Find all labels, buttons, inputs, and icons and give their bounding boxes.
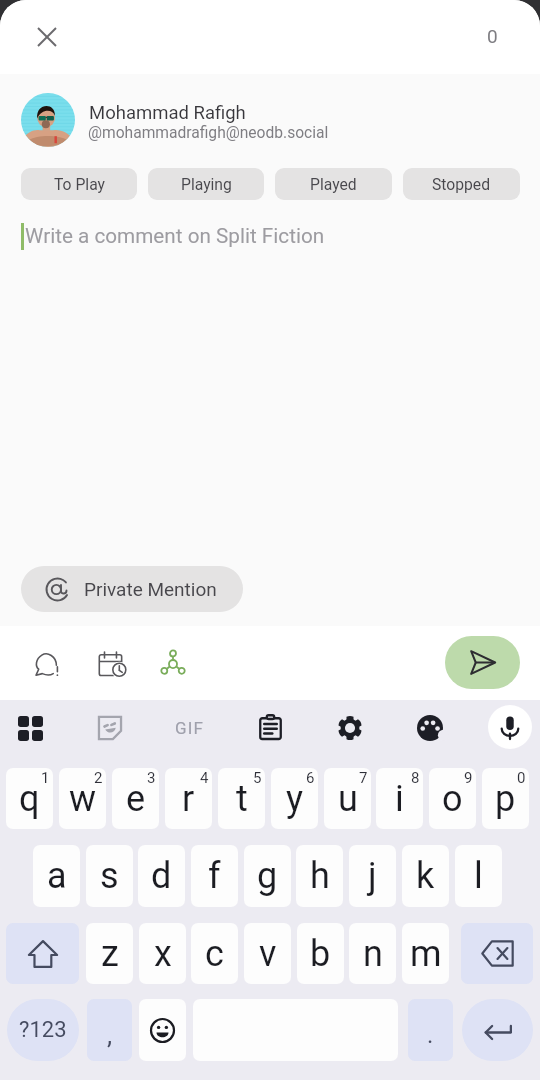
staticText: e [126, 778, 146, 820]
staticText: p [495, 778, 516, 820]
staticText: b [310, 933, 331, 975]
staticText: , [107, 1020, 113, 1050]
button[interactable]: Shift [6, 923, 79, 984]
button[interactable]: Voice input [488, 705, 532, 749]
button[interactable]: Private Mention [21, 566, 243, 612]
button[interactable]: o [429, 768, 476, 829]
staticText: f [208, 855, 221, 897]
button[interactable]: . [408, 999, 453, 1061]
staticText: c [205, 933, 224, 975]
staticText: 1 [41, 769, 50, 787]
staticText: GIF [175, 718, 205, 738]
button[interactable]: Visibility [151, 641, 195, 685]
button[interactable]: l [455, 845, 502, 907]
staticText: q [19, 778, 40, 820]
staticText: x [154, 933, 172, 975]
staticText: 6 [306, 769, 315, 787]
button[interactable]: Send [445, 636, 520, 689]
button[interactable]: Backspace [461, 923, 533, 984]
staticText: r [182, 778, 195, 820]
button[interactable]: Close [23, 13, 71, 61]
staticText: u [338, 778, 358, 820]
staticText: t [236, 778, 248, 820]
button[interactable]: Apps [8, 706, 52, 750]
button[interactable]: Stickers [88, 706, 132, 750]
staticText: j [368, 855, 377, 897]
button[interactable]: Emoji [139, 999, 186, 1061]
staticText: z [101, 933, 119, 975]
button[interactable]: Clipboard [248, 705, 292, 749]
button[interactable]: n [349, 923, 396, 984]
button[interactable]: Content warning [25, 642, 69, 686]
staticText: . [427, 1021, 434, 1049]
staticText: g [257, 855, 278, 897]
button[interactable]: Played [275, 168, 392, 200]
staticText: 7 [359, 769, 368, 787]
button[interactable]: c [191, 923, 238, 984]
staticText: @mohammadrafigh@neodb.social [88, 124, 329, 142]
staticText: 4 [200, 769, 209, 787]
staticText: Stopped [432, 175, 491, 193]
staticText: i [395, 778, 404, 820]
button[interactable]: v [244, 923, 291, 984]
button[interactable]: z [86, 923, 133, 984]
staticText: Played [310, 175, 357, 193]
staticText: w [69, 778, 97, 820]
staticText: k [416, 855, 435, 897]
staticText: o [442, 778, 463, 820]
button[interactable]: y [271, 768, 318, 829]
button[interactable]: e [112, 768, 159, 829]
button[interactable]: m [402, 923, 449, 984]
staticText: y [286, 778, 304, 820]
button[interactable]: Themes [408, 706, 452, 750]
button[interactable]: a [33, 845, 80, 907]
button[interactable]: Stopped [403, 168, 520, 200]
button[interactable]: w [59, 768, 106, 829]
staticText: Mohammad Rafigh [89, 102, 246, 124]
button[interactable]: k [402, 845, 449, 907]
button[interactable]: , [87, 999, 132, 1061]
button[interactable]: g [244, 845, 291, 907]
button[interactable]: f [191, 845, 238, 907]
button[interactable]: t [218, 768, 265, 829]
staticText: n [363, 933, 383, 975]
button[interactable]: GIF [168, 706, 212, 750]
staticText: h [310, 855, 330, 897]
button[interactable]: x [139, 923, 186, 984]
staticText: l [474, 855, 483, 897]
staticText: a [47, 855, 67, 897]
button[interactable]: Schedule [89, 641, 133, 685]
button[interactable]: r [165, 768, 212, 829]
staticText: 0 [487, 25, 498, 47]
button[interactable]: i [376, 768, 423, 829]
staticText: 2 [94, 769, 103, 787]
button[interactable]: Settings [328, 706, 372, 750]
button[interactable]: b [297, 923, 344, 984]
button[interactable]: j [349, 845, 396, 907]
staticText: ?123 [19, 1017, 67, 1043]
staticText: v [259, 933, 277, 975]
staticText: 5 [253, 769, 262, 787]
staticText: s [100, 855, 119, 897]
staticText: Write a comment on Split Fiction [25, 224, 325, 248]
staticText: 8 [411, 769, 420, 787]
staticText: d [151, 855, 172, 897]
button[interactable]: h [296, 845, 343, 907]
button[interactable]: u [324, 768, 371, 829]
staticText: To Play [54, 175, 105, 193]
button[interactable]: To Play [21, 168, 137, 200]
button[interactable]: d [138, 845, 185, 907]
staticText: m [410, 933, 442, 975]
button[interactable]: s [86, 845, 133, 907]
button[interactable]: Playing [148, 168, 264, 200]
staticText: Private Mention [84, 578, 217, 600]
button[interactable]: q [6, 768, 53, 829]
staticText: Playing [181, 175, 232, 193]
button[interactable]: ?123 [7, 999, 79, 1061]
staticText: 9 [464, 769, 473, 787]
button[interactable]: Enter [462, 999, 533, 1061]
staticText: 3 [147, 769, 156, 787]
staticText: 0 [517, 769, 526, 787]
button[interactable]: p [482, 768, 529, 829]
